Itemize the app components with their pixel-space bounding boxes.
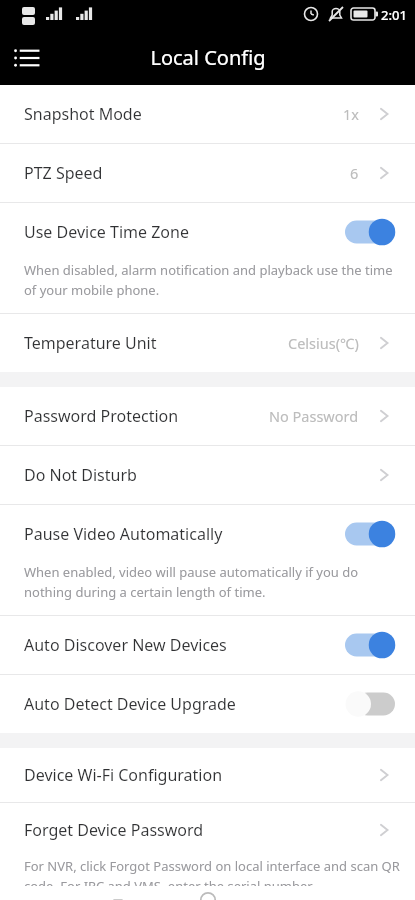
button[interactable]: Auto Detect Device Upgrade [0,675,415,733]
staticText: 2:01 [381,6,407,24]
staticText: Password Protection [24,405,179,427]
staticText: Snapshot Mode [24,103,142,125]
staticText: Auto Detect Device Upgrade [24,693,236,715]
button[interactable]: Password Protection [0,387,415,445]
button[interactable]: Pause Video Automatically [0,505,415,563]
button[interactable]: Do Not Disturb [0,446,415,504]
staticText: Use Device Time Zone [24,221,189,243]
staticText: Auto Discover New Devices [24,634,227,656]
button[interactable]: Use Device Time Zone [0,203,415,261]
button[interactable]: PTZ Speed [0,144,415,202]
button[interactable]: Snapshot Mode [0,85,415,143]
staticText: 6 [350,163,359,183]
staticText: Temperature Unit [24,332,157,354]
button[interactable]: Auto Discover New Devices [0,616,415,674]
staticText: When disabled, alarm notification and pl… [24,261,403,299]
staticText: Device Wi-Fi Configuration [24,764,223,786]
staticText: Local Config [150,44,266,71]
button[interactable]: Temperature Unit [0,314,415,372]
staticText: Celsius(℃) [288,333,359,353]
staticText: For NVR, click Forgot Password on local … [24,857,403,886]
staticText: Do Not Disturb [24,464,137,486]
staticText: 1x [343,104,359,124]
button[interactable]: Forget Device Password [0,803,415,857]
button[interactable]: Device Wi-Fi Configuration [0,748,415,802]
staticText: Pause Video Automatically [24,523,223,545]
staticText: PTZ Speed [24,162,103,184]
staticText: Forget Device Password [24,819,204,841]
staticText: When enabled, video will pause automatic… [24,563,403,601]
staticText: No Password [269,406,359,426]
button[interactable]: Menu [0,31,54,85]
